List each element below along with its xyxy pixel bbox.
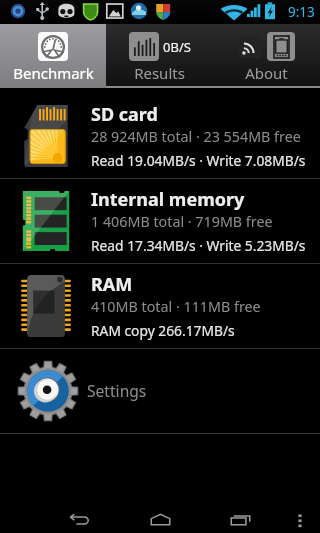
button[interactable]: Benchmark xyxy=(0,24,106,88)
button[interactable]: About xyxy=(213,24,320,88)
staticText: Benchmark xyxy=(13,63,94,83)
button[interactable]: More options xyxy=(280,502,320,533)
button[interactable]: SD card xyxy=(0,94,320,178)
button[interactable]: 0B/S xyxy=(106,24,213,88)
button[interactable]: Home xyxy=(120,502,200,533)
staticText: Results xyxy=(134,63,185,83)
staticText: Read 17.34MB/s · Write 5.23MB/s xyxy=(91,236,306,255)
staticText: 1 406MB total · 719MB free xyxy=(91,212,273,231)
staticText: 28 924MB total · 23 554MB free xyxy=(91,127,301,146)
staticText: RAM copy 266.17MB/s xyxy=(91,321,235,340)
button[interactable]: Internal memory xyxy=(0,179,320,263)
staticText: Settings xyxy=(87,380,147,401)
staticText: Read 19.04MB/s · Write 7.08MB/s xyxy=(91,151,306,170)
staticText: About xyxy=(245,63,288,83)
staticText: RAM xyxy=(91,272,133,297)
button[interactable]: RAM xyxy=(0,264,320,348)
staticText: SD card xyxy=(91,102,158,127)
button[interactable]: Settings xyxy=(0,349,320,433)
staticText: 410MB total · 111MB free xyxy=(91,297,261,316)
staticText: 9:13 xyxy=(288,3,315,21)
button[interactable]: Back xyxy=(40,502,120,533)
button[interactable]: Recent apps xyxy=(200,502,280,533)
staticText: Internal memory xyxy=(91,187,245,212)
staticText: 0B/S xyxy=(163,38,191,56)
